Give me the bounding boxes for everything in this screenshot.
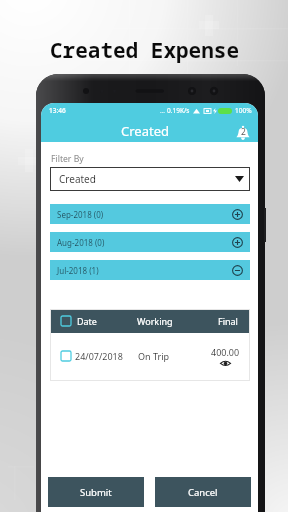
button[interactable]: Notifications: [236, 126, 250, 140]
button[interactable]: Select all: [61, 316, 71, 326]
staticText: Sep-2018 (0): [57, 209, 104, 220]
button[interactable]: Collapse: [232, 265, 243, 276]
staticText: Date: [77, 315, 97, 327]
staticText: Aug-2018 (0): [57, 237, 105, 248]
staticText: 400.00: [211, 346, 240, 358]
staticText: Cancel: [188, 486, 218, 499]
staticText: Working: [137, 315, 173, 327]
staticText: ...: [160, 107, 165, 115]
staticText: 2: [241, 126, 246, 138]
staticText: Filter By: [51, 153, 84, 165]
staticText: On Trip: [138, 350, 170, 362]
button[interactable]: Created: [50, 167, 250, 191]
button[interactable]: Expand: [232, 237, 243, 248]
staticText: Jul-2018 (1): [57, 265, 99, 276]
button[interactable]: Submit: [48, 477, 144, 507]
staticText: Created: [121, 122, 169, 140]
button[interactable]: Jul-2018 (1): [50, 260, 250, 280]
staticText: Created: [59, 172, 96, 186]
button[interactable]: Sep-2018 (0): [50, 204, 250, 224]
staticText: Created Expense: [50, 36, 239, 65]
staticText: 100%: [235, 106, 252, 115]
button[interactable]: Aug-2018 (0): [50, 232, 250, 252]
button[interactable]: View details: [220, 359, 231, 367]
button[interactable]: Expand: [232, 209, 243, 220]
staticText: 24/07/2018: [75, 350, 123, 362]
button[interactable]: Select row: [61, 351, 71, 361]
staticText: Final: [218, 315, 238, 327]
button[interactable]: Cancel: [155, 477, 251, 507]
staticText: 0.19K/s: [167, 106, 190, 115]
staticText: 13:46: [49, 106, 66, 115]
staticText: Submit: [80, 486, 112, 499]
